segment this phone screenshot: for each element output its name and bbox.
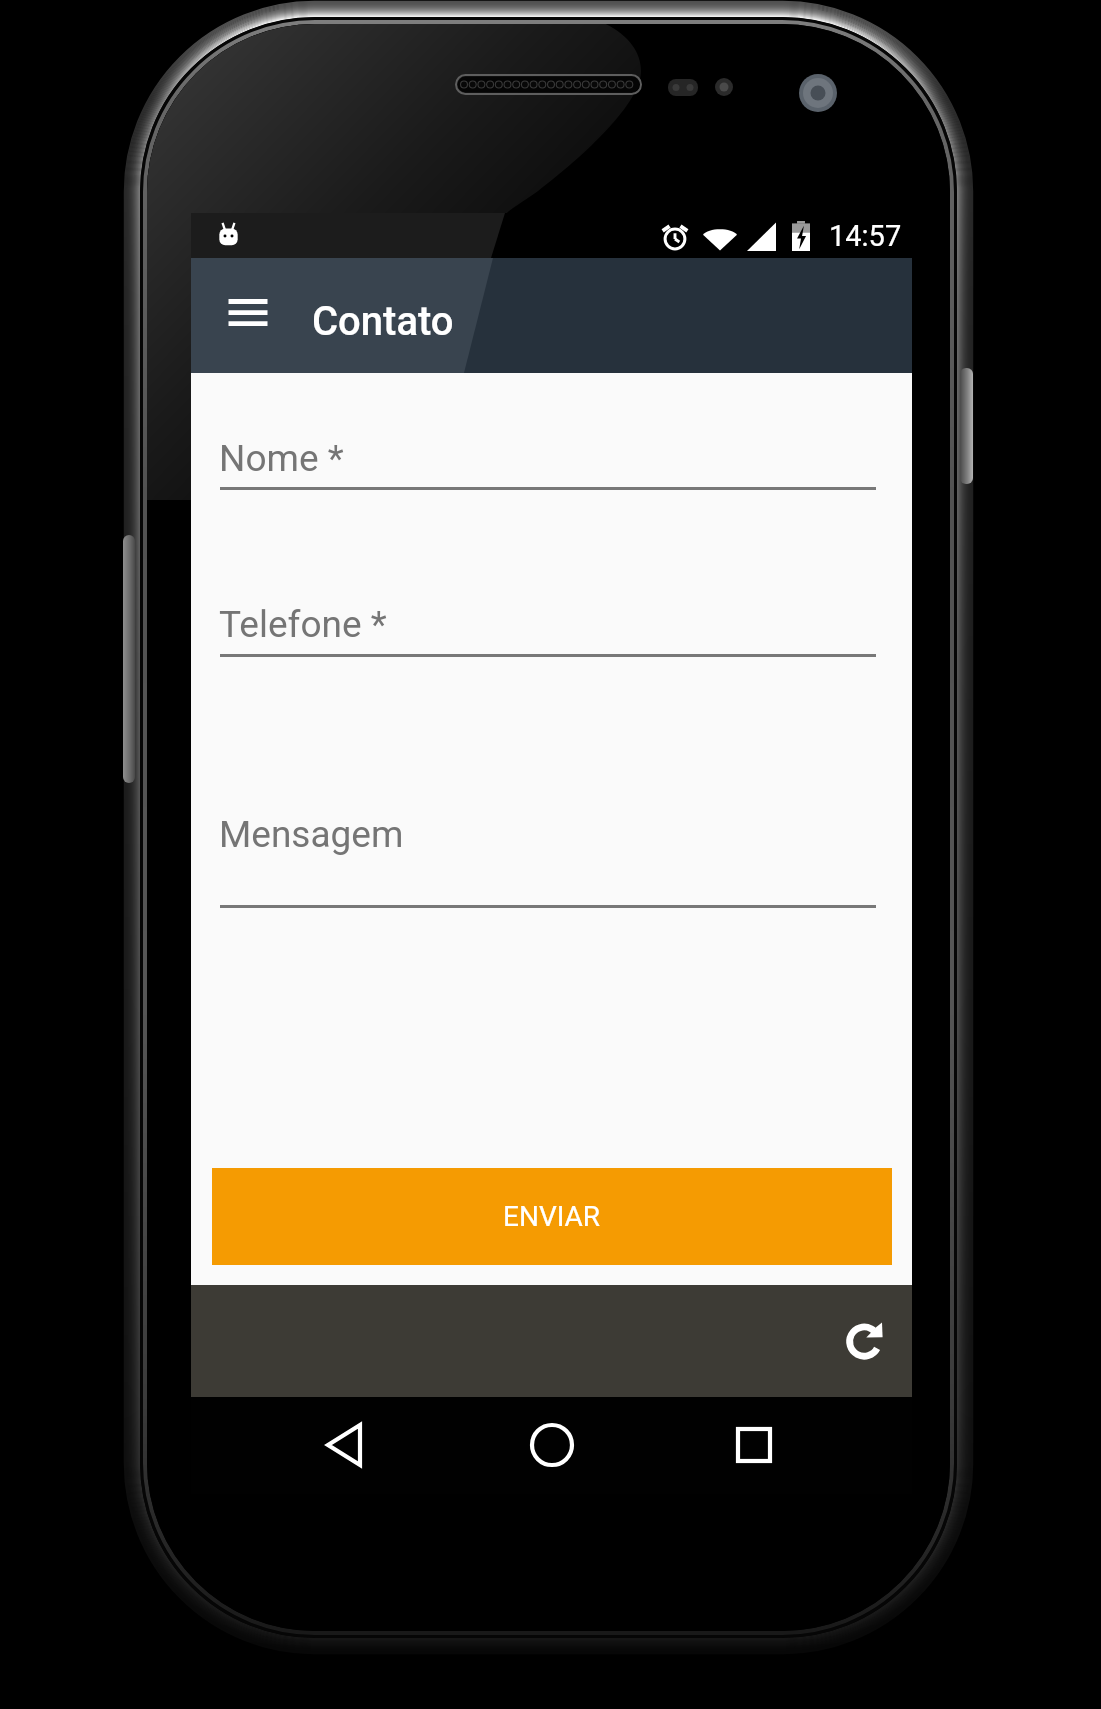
staticText: 14:57 bbox=[829, 219, 902, 253]
staticText: ENVIAR bbox=[503, 1200, 601, 1233]
staticText: Nome * bbox=[219, 437, 344, 480]
button[interactable]: Recent apps bbox=[729, 1420, 779, 1470]
staticText: Telefone * bbox=[219, 603, 387, 646]
button[interactable]: Open navigation menu bbox=[213, 280, 284, 351]
button[interactable]: Refresh bbox=[836, 1313, 892, 1369]
button[interactable]: ENVIAR bbox=[212, 1168, 892, 1265]
staticText: Contato bbox=[312, 298, 454, 345]
button[interactable]: Back bbox=[323, 1420, 373, 1470]
button[interactable]: Home bbox=[527, 1420, 577, 1470]
staticText: Mensagem bbox=[219, 813, 404, 856]
